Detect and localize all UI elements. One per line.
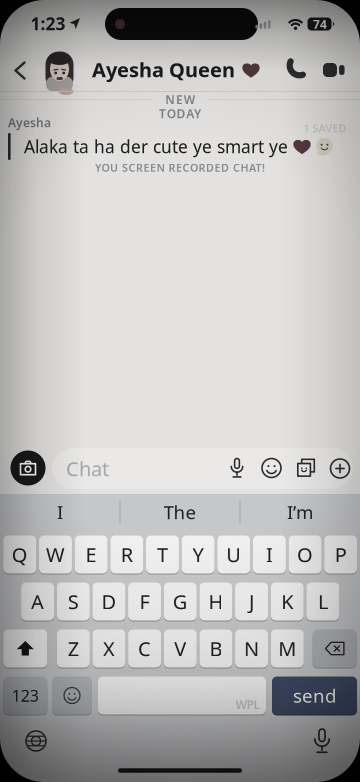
button[interactable]: X	[92, 629, 125, 668]
button[interactable]	[259, 456, 283, 480]
button[interactable]: I’m	[250, 497, 350, 527]
button[interactable]	[317, 55, 351, 85]
staticText: 1 SAVED	[303, 121, 346, 135]
staticText: Alaka ta ha der cute ye smart ye	[24, 135, 288, 158]
staticText: E	[86, 541, 97, 568]
button[interactable]	[308, 727, 336, 755]
button[interactable]: The	[130, 497, 230, 527]
staticText: Ayesha	[8, 114, 51, 130]
button[interactable]	[10, 450, 45, 485]
button[interactable]	[328, 456, 352, 480]
staticText: S	[68, 588, 79, 615]
staticText: 74	[313, 16, 327, 32]
button[interactable]	[294, 456, 318, 480]
button[interactable]: T	[146, 535, 179, 574]
button[interactable]: WPL	[98, 676, 266, 715]
staticText: L	[318, 588, 328, 615]
button[interactable]	[52, 676, 92, 715]
staticText: I	[266, 541, 273, 568]
staticText: T	[157, 541, 168, 568]
button[interactable]: Chat	[52, 448, 353, 489]
button[interactable]: L	[306, 582, 339, 621]
button[interactable]: K	[271, 582, 304, 621]
button[interactable]: R	[110, 535, 143, 574]
staticText: Z	[68, 635, 79, 662]
button[interactable]: E	[75, 535, 108, 574]
staticText: Chat	[66, 455, 109, 482]
staticText: A	[31, 588, 44, 615]
button[interactable]: V	[164, 629, 197, 668]
button[interactable]	[5, 55, 35, 85]
button[interactable]: A	[21, 582, 54, 621]
staticText: NEW	[165, 91, 195, 107]
button[interactable]: Z	[57, 629, 90, 668]
staticText: TODAY	[159, 105, 201, 121]
staticText: 1:23	[30, 12, 65, 35]
staticText: N	[244, 635, 259, 662]
staticText: B	[209, 635, 222, 662]
button[interactable]: O	[289, 535, 322, 574]
staticText: X	[103, 635, 115, 662]
button[interactable]: D	[92, 582, 125, 621]
button[interactable]: I	[10, 497, 110, 527]
button[interactable]: G	[164, 582, 197, 621]
staticText: R	[121, 541, 133, 568]
staticText: I’m	[287, 500, 313, 524]
button[interactable]: 123	[3, 676, 47, 715]
staticText: W	[46, 541, 65, 568]
button[interactable]	[313, 629, 357, 668]
staticText: YOU SCREEN RECORDED CHAT!	[95, 160, 265, 175]
staticText: Q	[12, 541, 28, 568]
button[interactable]: C	[128, 629, 161, 668]
staticText: P	[335, 541, 347, 568]
button[interactable]: B	[199, 629, 232, 668]
staticText: D	[101, 588, 116, 615]
button[interactable]: F	[128, 582, 161, 621]
staticText: send	[293, 683, 336, 708]
button[interactable]: Y	[182, 535, 215, 574]
staticText: F	[140, 588, 150, 615]
staticText: I	[57, 500, 63, 524]
staticText: Y	[193, 541, 204, 568]
button[interactable]: H	[199, 582, 232, 621]
staticText: Ayesha Queen	[92, 56, 235, 83]
staticText: U	[226, 541, 241, 568]
button[interactable]	[44, 50, 74, 92]
button[interactable]	[22, 727, 50, 755]
button[interactable]: S	[57, 582, 90, 621]
staticText: C	[138, 635, 151, 662]
button[interactable]	[225, 456, 249, 480]
staticText: J	[249, 588, 254, 615]
staticText: V	[174, 635, 186, 662]
button[interactable]: send	[272, 676, 357, 715]
button[interactable]	[280, 55, 310, 85]
staticText: M	[278, 635, 296, 662]
button[interactable]	[3, 629, 47, 668]
staticText: O	[297, 541, 313, 568]
staticText: 123	[12, 685, 39, 706]
button[interactable]: P	[324, 535, 357, 574]
staticText: G	[173, 588, 188, 615]
staticText: The	[163, 500, 196, 524]
button[interactable]: I	[253, 535, 286, 574]
staticText: K	[281, 588, 293, 615]
button[interactable]: Alaka ta ha der cute ye smart ye	[24, 131, 360, 161]
button[interactable]: J	[235, 582, 268, 621]
staticText: H	[208, 588, 223, 615]
button[interactable]: Q	[3, 535, 36, 574]
button[interactable]: N	[235, 629, 268, 668]
staticText: WPL	[235, 696, 260, 712]
button[interactable]: W	[39, 535, 72, 574]
button[interactable]: U	[217, 535, 250, 574]
button[interactable]: M	[271, 629, 304, 668]
